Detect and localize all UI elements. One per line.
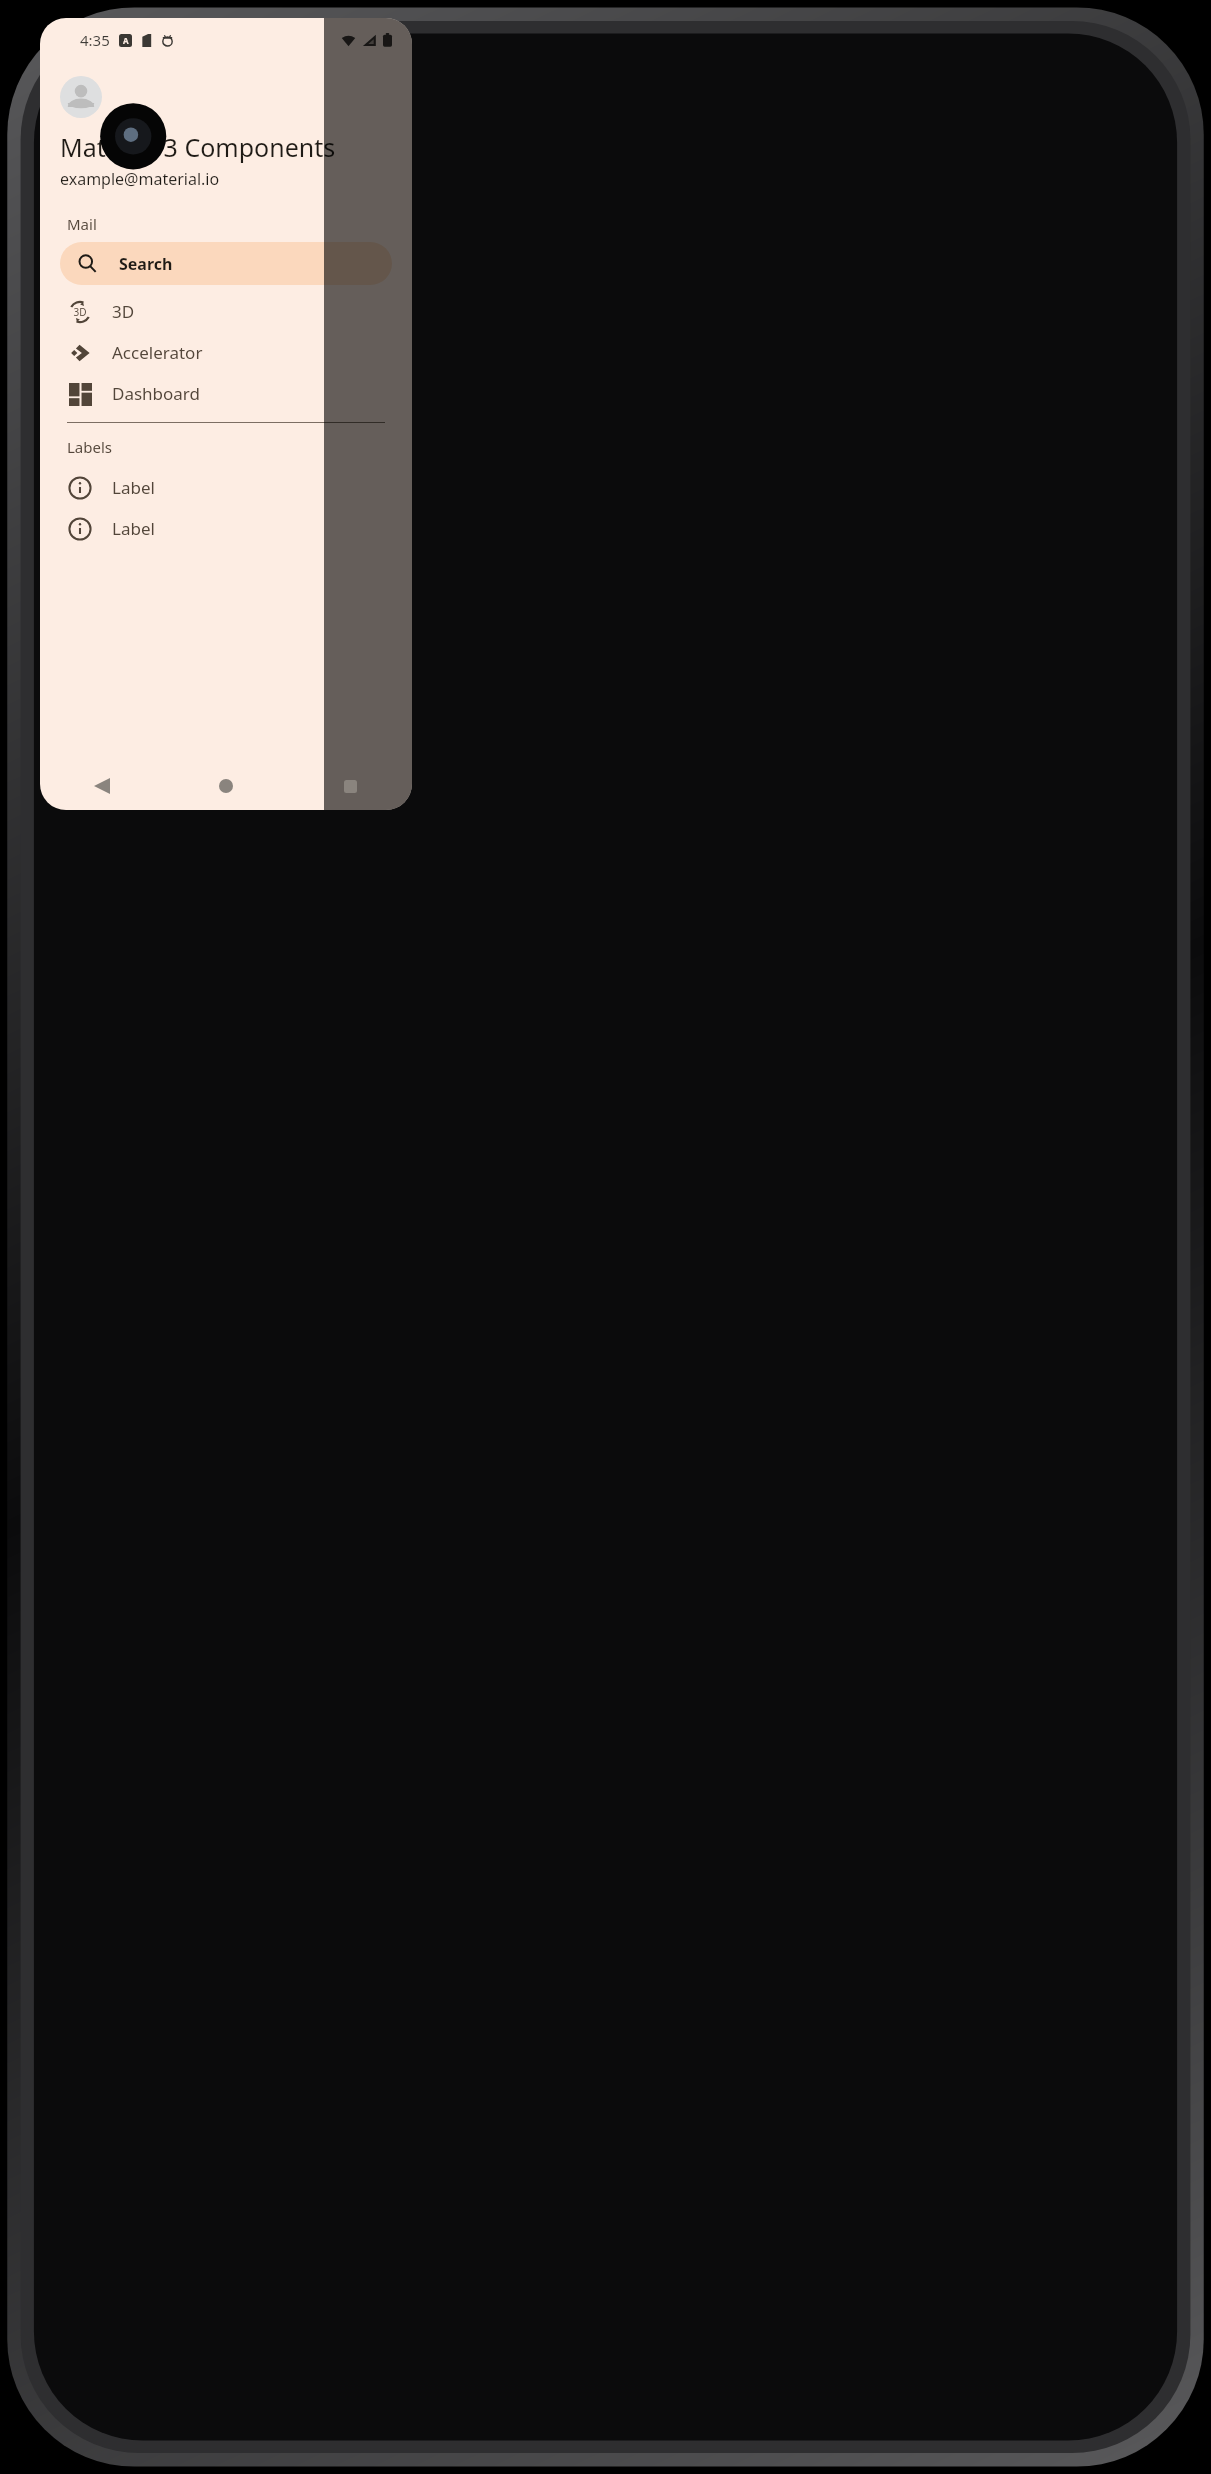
staticText: A [123,35,129,46]
button[interactable]: Dashboard [40,373,412,414]
button[interactable]: Label [40,467,412,508]
staticText: example@material.io [60,168,220,190]
staticText: Labels [67,437,113,457]
staticText: Label [112,476,155,499]
staticText: Mail [67,214,97,234]
button[interactable]: Search [60,242,392,285]
staticText: Material 3 Components [60,130,336,164]
staticText: Label [112,517,155,540]
staticText: Dashboard [112,382,201,405]
button[interactable]: Back [82,766,122,806]
staticText: 3D [73,305,87,319]
button[interactable]: Accelerator [40,332,412,373]
button[interactable]: Recents [330,766,370,806]
button[interactable]: Label [40,508,412,549]
staticText: Search [119,253,173,275]
staticText: 4:35 [80,30,110,50]
staticText: Accelerator [112,341,203,364]
staticText: 3D [112,300,135,323]
button[interactable]: Home [206,766,246,806]
button[interactable]: 3D [40,291,412,332]
